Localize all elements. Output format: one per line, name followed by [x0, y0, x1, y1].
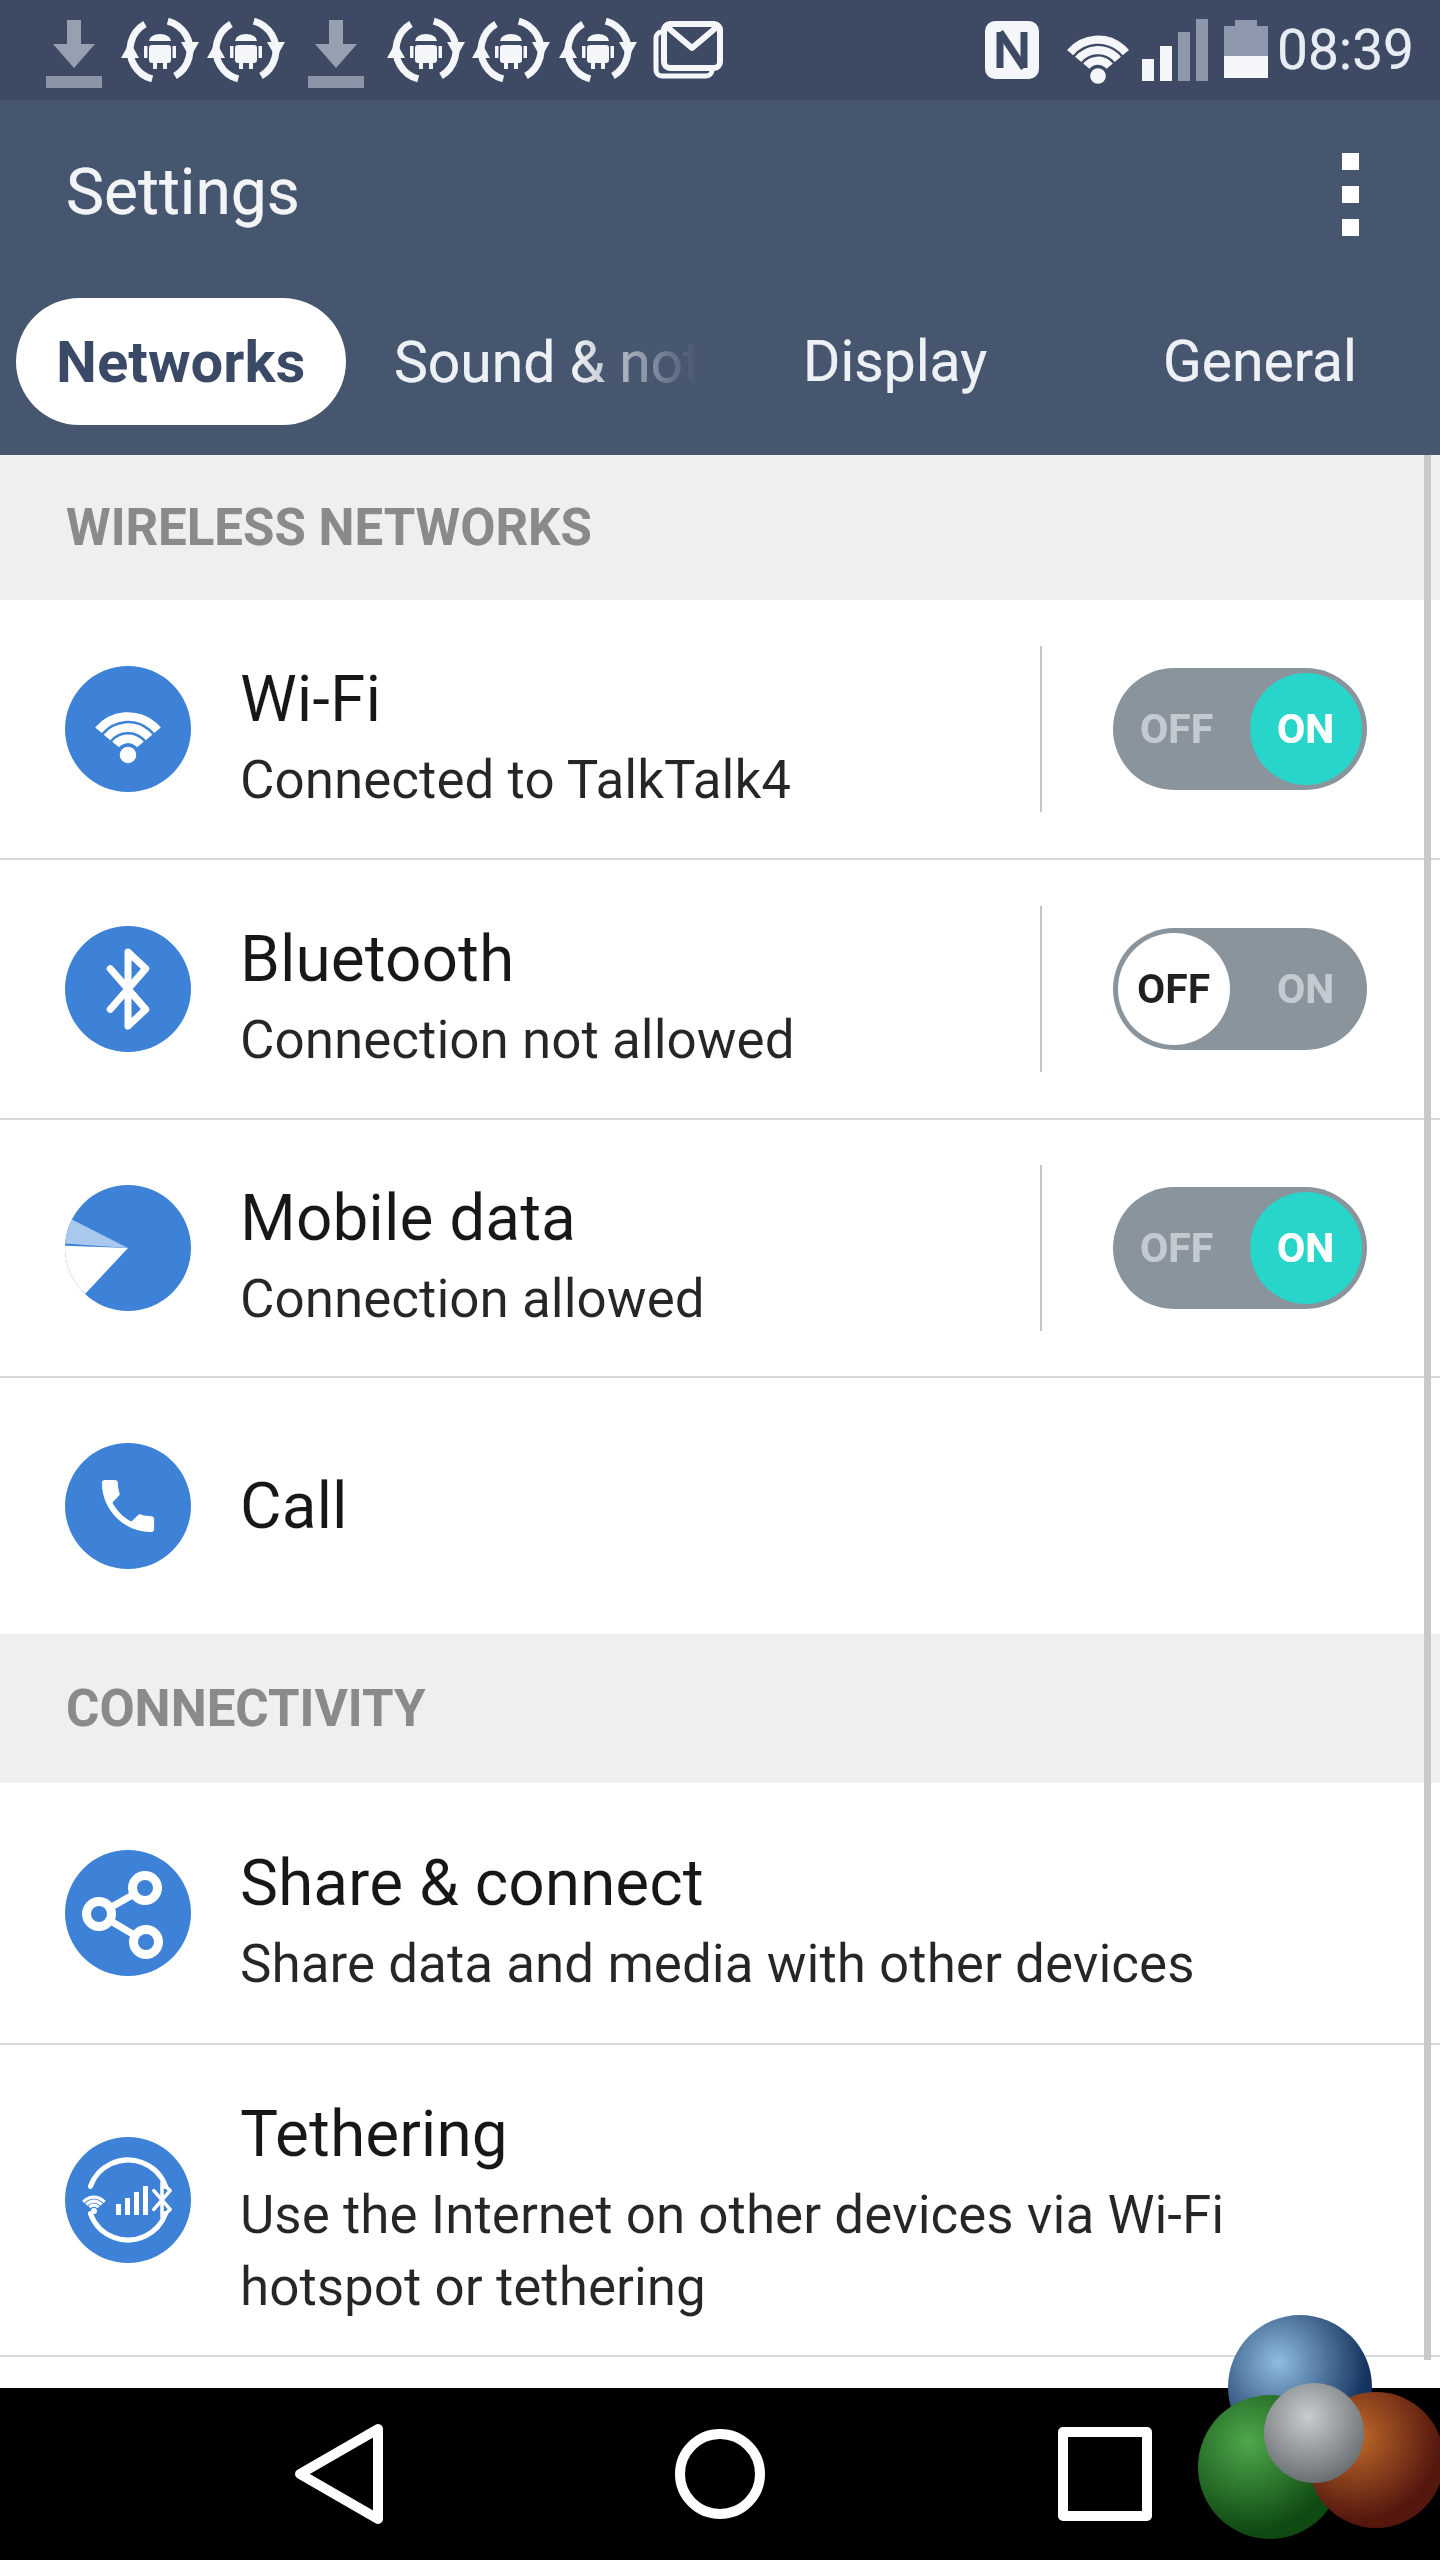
button[interactable]: Display	[803, 328, 988, 395]
staticText: 08:39	[1277, 18, 1414, 82]
button[interactable]: Networks	[16, 298, 346, 425]
staticText: Tethering	[240, 2097, 508, 2172]
staticText: OFF	[1137, 965, 1211, 1013]
staticText: Connection not allowed	[240, 1009, 1240, 1071]
staticText: CONNECTIVITY	[66, 1679, 426, 1739]
staticText: Use the Internet on other devices via Wi…	[240, 2184, 1240, 2318]
button[interactable]: Wi-Fi	[0, 600, 1440, 858]
button[interactable]: Call	[0, 1378, 1440, 1634]
staticText: OFF	[1140, 705, 1214, 753]
button[interactable]: General	[1163, 328, 1357, 395]
staticText: Call	[240, 1469, 348, 1544]
staticText: Bluetooth	[240, 922, 515, 997]
staticText: ON	[1277, 965, 1335, 1013]
staticText: Display	[803, 328, 988, 395]
button[interactable]	[1320, 145, 1380, 275]
button[interactable]: Mobile data	[0, 1120, 1440, 1376]
staticText: Sound & notification	[394, 329, 696, 396]
button[interactable]: Share & connect	[0, 1783, 1440, 2043]
staticText: WIRELESS NETWORKS	[66, 498, 592, 558]
staticText: Settings	[66, 155, 300, 230]
button[interactable]: OFF	[1113, 1187, 1367, 1309]
staticText: Share data and media with other devices	[240, 1933, 1240, 1995]
staticText: Share & connect	[240, 1846, 704, 1921]
button[interactable]: Sound & notification	[394, 322, 696, 402]
staticText: ON	[1277, 705, 1335, 753]
staticText: Mobile data	[240, 1181, 576, 1256]
staticText: Connected to TalkTalk4	[240, 749, 1240, 811]
staticText: General	[1163, 328, 1357, 395]
staticText: OFF	[1140, 1224, 1214, 1272]
button[interactable]: Tethering	[0, 2045, 1440, 2355]
staticText: ON	[1277, 1224, 1335, 1272]
staticText: Wi-Fi	[240, 662, 381, 737]
button[interactable]: Bluetooth	[0, 860, 1440, 1118]
button[interactable]: OFF	[1113, 928, 1367, 1050]
button[interactable]: OFF	[1113, 668, 1367, 790]
staticText: Connection allowed	[240, 1268, 1240, 1330]
staticText: Networks	[56, 328, 306, 396]
